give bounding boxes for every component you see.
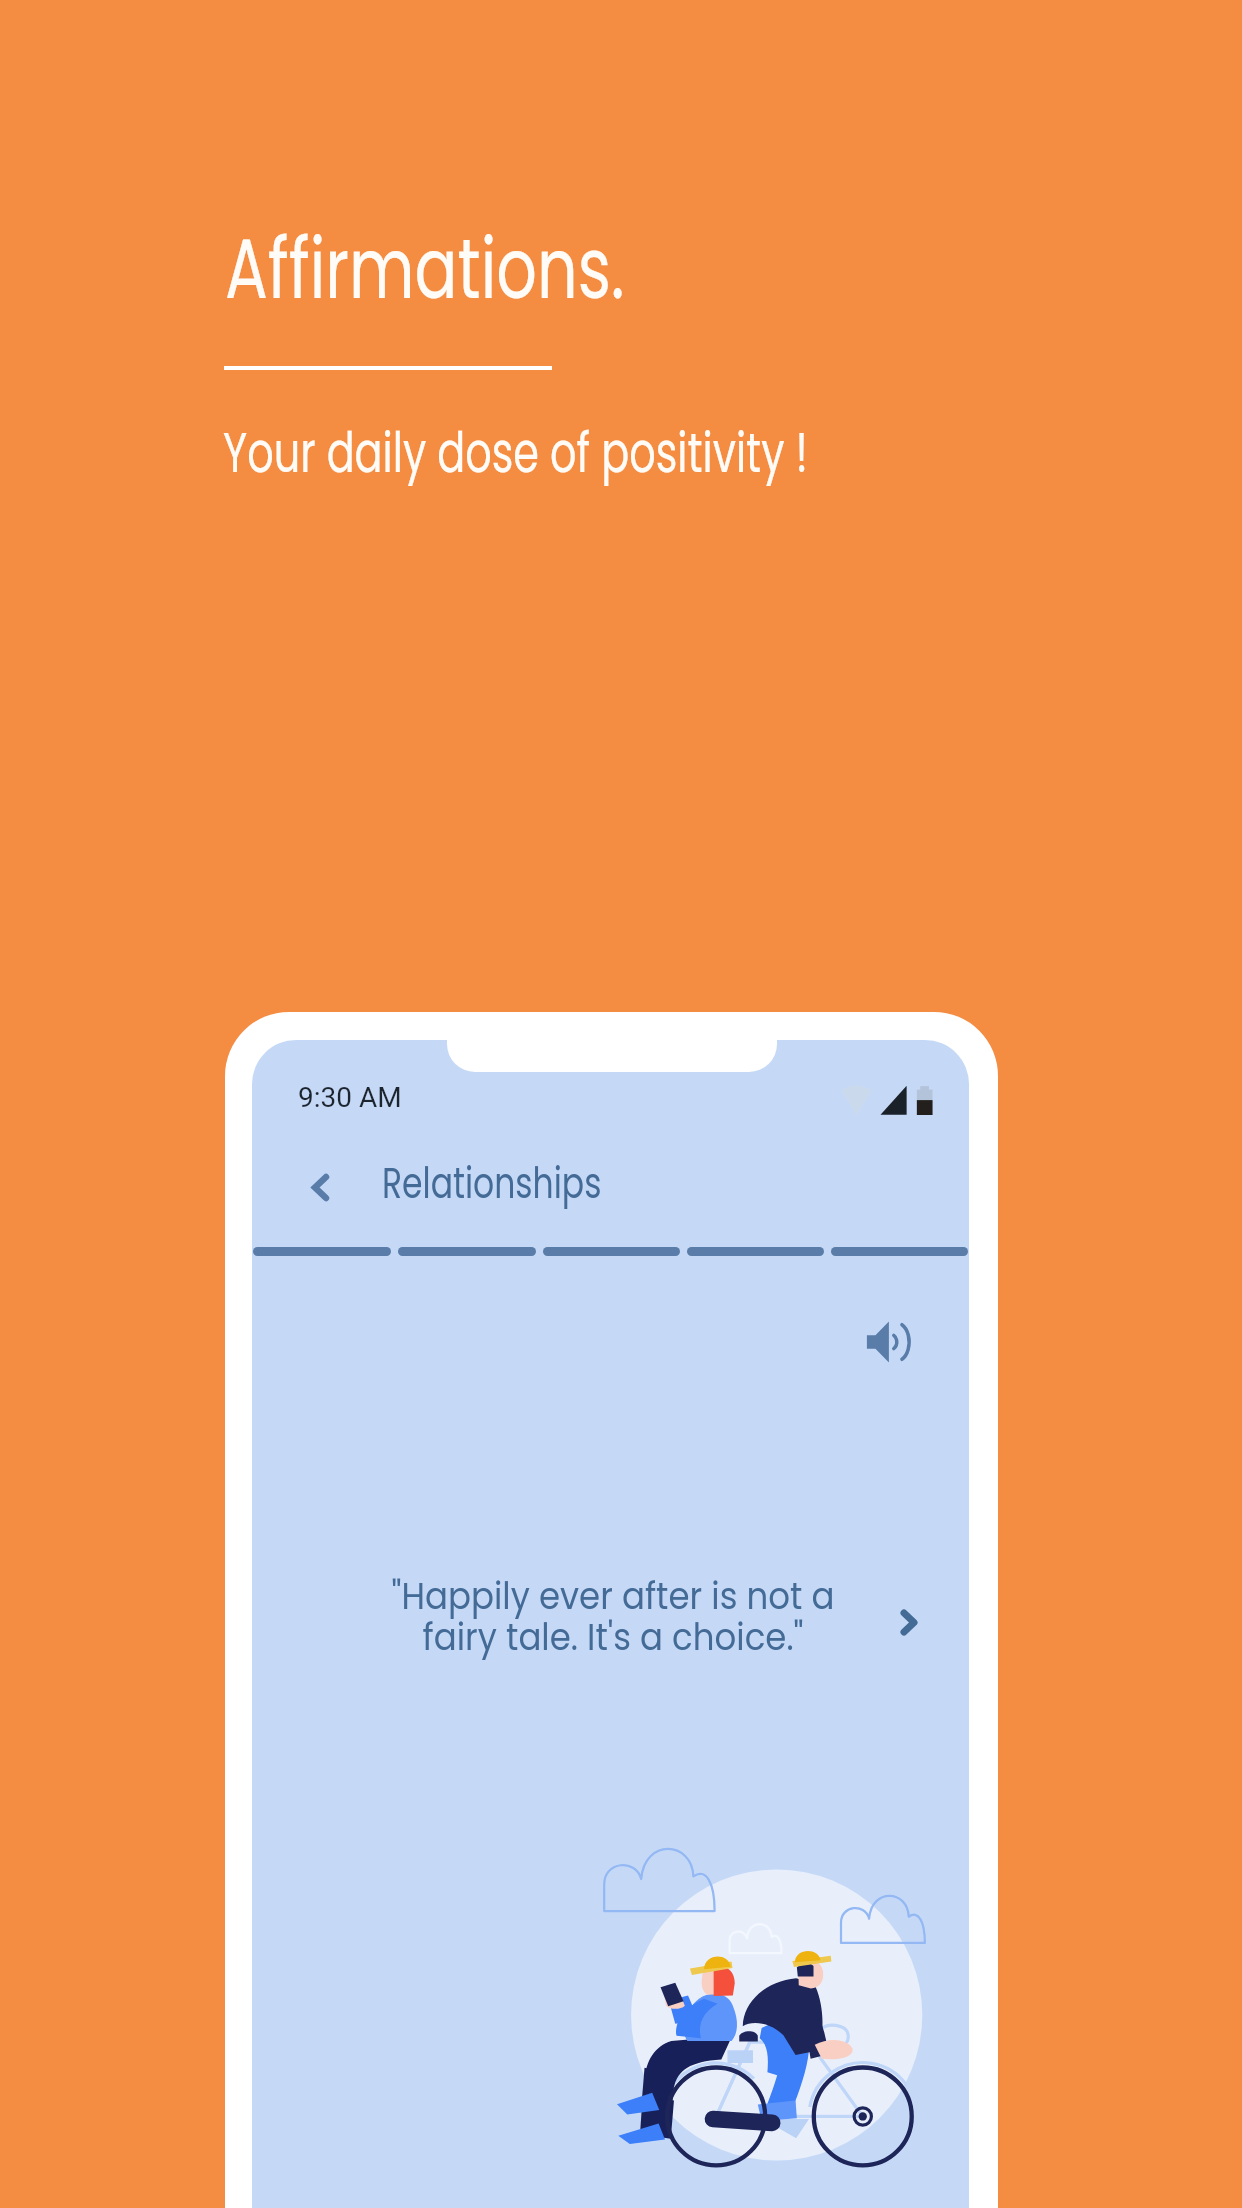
staticText: "Happily ever after is not a fairy tale.…	[362, 1569, 864, 1663]
button[interactable]: Step 1 of 5	[253, 1247, 391, 1256]
staticText: Your daily dose of positivity !	[223, 413, 808, 491]
staticText: Affirmations.	[225, 210, 625, 328]
staticText: 9:30 AM	[298, 1081, 402, 1114]
button[interactable]: Step 3 of 5	[543, 1247, 680, 1256]
button[interactable]: Next affirmation	[880, 1593, 938, 1651]
button[interactable]: "Happily ever after is not a fairy tale.…	[362, 1569, 864, 1663]
button[interactable]: Step 5 of 5	[831, 1247, 968, 1256]
button[interactable]: Step 4 of 5	[687, 1247, 824, 1256]
button[interactable]: Play audio	[851, 1305, 925, 1379]
button[interactable]: Step 2 of 5	[398, 1247, 536, 1256]
button[interactable]: Back	[285, 1152, 355, 1222]
staticText: Relationships	[382, 1154, 602, 1213]
